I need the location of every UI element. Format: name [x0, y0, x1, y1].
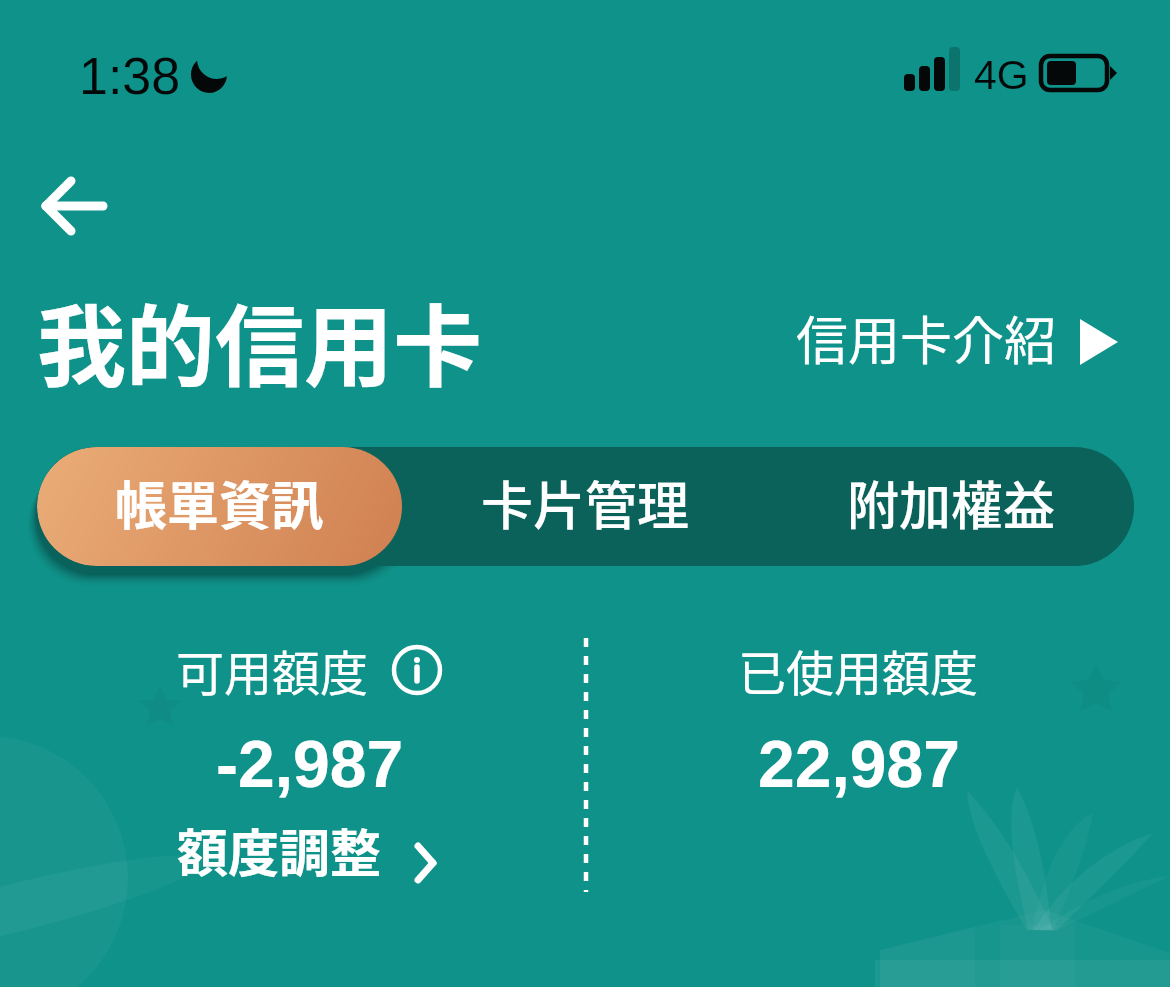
staticText: 我的信用卡 [37, 276, 482, 405]
staticText: 額度調整 [177, 813, 382, 887]
button[interactable]: 額度調整 [177, 813, 443, 887]
staticText: 附加權益 [847, 465, 1056, 540]
button[interactable]: 附加權益 [768, 447, 1134, 566]
staticText: 1:38 [79, 47, 181, 105]
button[interactable]: 信用卡介紹 [789, 296, 1124, 371]
staticText: 帳單資訊 [115, 465, 324, 540]
staticText: 可用額度 [176, 635, 369, 705]
staticText: 22,987 [758, 727, 960, 801]
staticText: 已使用額度 [738, 635, 979, 705]
button[interactable]: Info [391, 644, 443, 696]
staticText: 卡片管理 [481, 465, 690, 540]
staticText: 4G [974, 52, 1029, 98]
button[interactable]: 帳單資訊 [37, 447, 402, 566]
button[interactable]: Back [26, 156, 126, 256]
button[interactable]: 卡片管理 [402, 447, 768, 566]
staticText: 信用卡介紹 [796, 300, 1057, 375]
staticText: -2,987 [216, 727, 404, 801]
